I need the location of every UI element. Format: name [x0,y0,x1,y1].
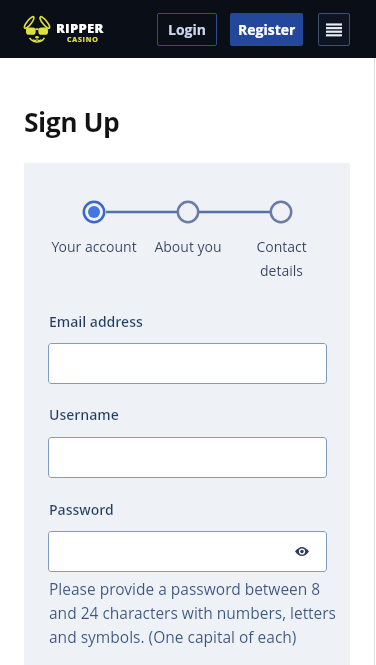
staticText: Register [238,20,296,39]
button[interactable] [48,343,327,384]
button[interactable] [48,437,327,478]
staticText: Email address [49,312,143,331]
staticText: Please provide a password between 8 [49,578,321,599]
staticText: details [260,261,303,280]
staticText: Contact [256,237,307,256]
button[interactable] [48,531,327,572]
staticText: Login [168,20,206,39]
staticText: About you [154,237,222,256]
button[interactable]: Register [230,13,303,46]
button[interactable]: Login [157,13,217,46]
staticText: Your account [51,237,137,256]
staticText: Sign Up [24,104,120,140]
staticText: and symbols. (One capital of each) [49,626,297,647]
staticText: RIPPER [56,19,104,37]
staticText: and 24 characters with numbers, letters [49,602,337,623]
staticText: CASINO [67,35,99,45]
staticText: Username [49,405,119,424]
staticText: Password [49,500,114,519]
button[interactable] [318,13,350,46]
